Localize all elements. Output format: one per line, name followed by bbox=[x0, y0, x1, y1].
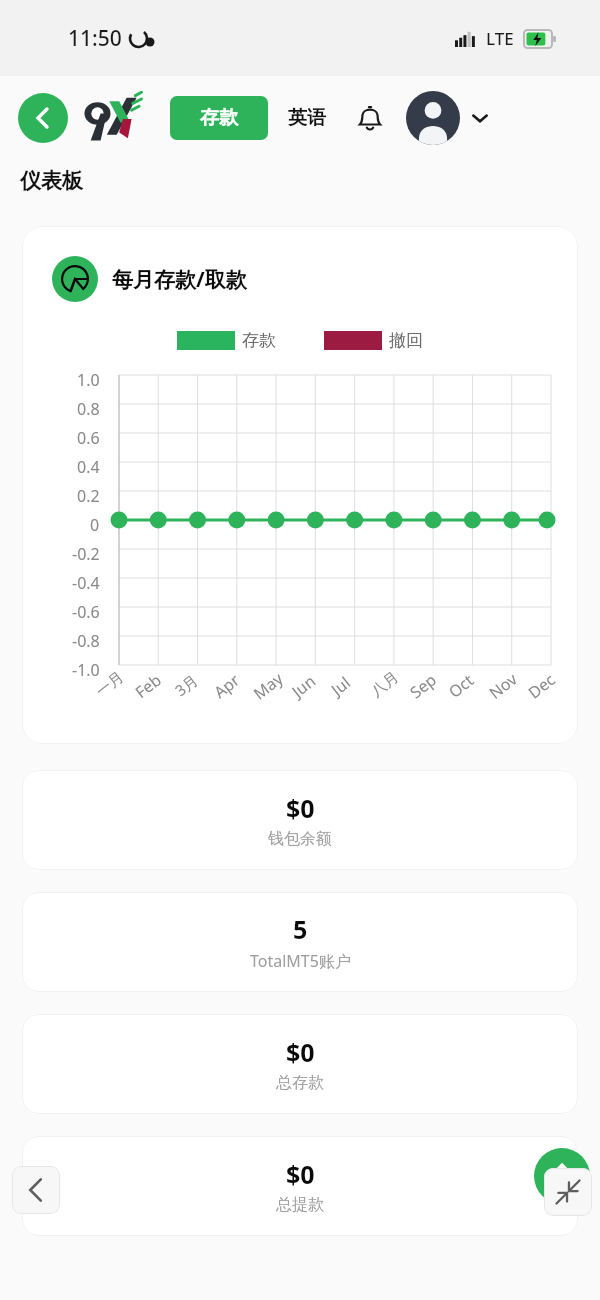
button[interactable]: Profile bbox=[406, 91, 460, 145]
staticText: 0.2 bbox=[77, 485, 100, 507]
staticText: Dec bbox=[523, 668, 560, 704]
staticText: 存款 bbox=[200, 106, 238, 130]
staticText: 总提款 bbox=[276, 1195, 324, 1215]
button[interactable]: $0 bbox=[22, 1014, 578, 1114]
staticText: Feb bbox=[130, 669, 166, 703]
staticText: $0 bbox=[286, 1035, 315, 1069]
staticText: 11:50 bbox=[68, 24, 122, 53]
staticText: Jun bbox=[287, 670, 320, 702]
staticText: -0.2 bbox=[72, 543, 100, 565]
staticText: 0.6 bbox=[77, 427, 100, 449]
staticText: 英语 bbox=[288, 106, 326, 130]
staticText: Jul bbox=[326, 671, 355, 700]
staticText: 3月 bbox=[170, 670, 202, 700]
staticText: 总存款 bbox=[276, 1073, 324, 1093]
button[interactable]: 英语 bbox=[288, 106, 326, 130]
button[interactable]: Back bbox=[12, 1166, 60, 1214]
staticText: 0.4 bbox=[77, 456, 100, 478]
staticText: -0.6 bbox=[72, 601, 100, 623]
button[interactable]: Notifications bbox=[352, 100, 388, 136]
button[interactable]: $0 bbox=[22, 770, 578, 870]
button[interactable]: Scroll to top bbox=[534, 1148, 590, 1204]
button[interactable]: 存款 bbox=[170, 96, 268, 140]
staticText: 每月存款/取款 bbox=[112, 265, 247, 294]
button[interactable]: Collapse bbox=[544, 1168, 592, 1216]
staticText: Oct bbox=[444, 669, 478, 703]
staticText: $0 bbox=[286, 1157, 315, 1191]
staticText: -1.0 bbox=[72, 659, 100, 681]
staticText: 0 bbox=[90, 514, 100, 536]
staticText: -0.4 bbox=[72, 572, 100, 594]
staticText: 八月 bbox=[367, 668, 403, 701]
staticText: 撤回 bbox=[389, 330, 423, 351]
staticText: 存款 bbox=[242, 330, 276, 351]
button[interactable]: Back bbox=[18, 93, 68, 143]
staticText: Sep bbox=[405, 669, 441, 703]
staticText: May bbox=[249, 667, 287, 704]
staticText: 仪表板 bbox=[20, 168, 83, 194]
button[interactable]: 每月存款/取款 bbox=[22, 226, 578, 744]
staticText: LTE bbox=[486, 27, 514, 50]
staticText: 5 bbox=[293, 912, 308, 946]
staticText: 钱包余额 bbox=[268, 829, 332, 849]
button[interactable] bbox=[82, 90, 144, 146]
staticText: TotalMT5账户 bbox=[250, 950, 351, 972]
staticText: -0.8 bbox=[72, 630, 100, 652]
button[interactable]: Expand menu bbox=[468, 106, 492, 130]
staticText: $0 bbox=[286, 791, 315, 825]
button[interactable]: 5 bbox=[22, 892, 578, 992]
staticText: Apr bbox=[209, 669, 244, 703]
button[interactable]: $0 bbox=[22, 1136, 578, 1236]
staticText: 1.0 bbox=[77, 369, 100, 391]
staticText: 0.8 bbox=[77, 398, 100, 420]
staticText: Nov bbox=[484, 668, 522, 704]
staticText: 一月 bbox=[92, 668, 128, 701]
